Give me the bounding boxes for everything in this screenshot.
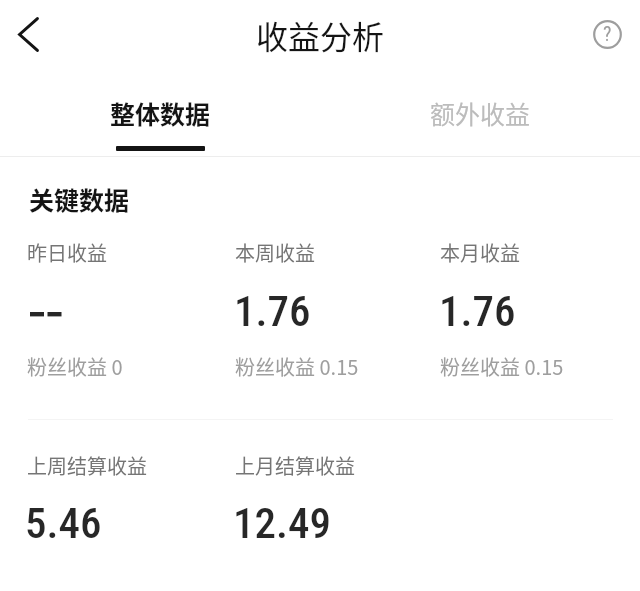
staticText: 粉丝收益 0.15	[235, 352, 359, 381]
staticText: 粉丝收益 0.15	[440, 352, 564, 381]
staticText: 上月结算收益	[235, 451, 355, 480]
staticText: 收益分析	[256, 12, 385, 58]
staticText: 整体数据	[110, 95, 211, 131]
staticText: 1.76	[439, 286, 516, 336]
staticText: 昨日收益	[27, 238, 107, 267]
staticText: 本周收益	[235, 238, 315, 267]
staticText: 5.46	[25, 498, 102, 548]
staticText: ?	[603, 22, 612, 45]
button[interactable]: 上周结算收益	[27, 451, 207, 543]
staticText: 额外收益	[430, 95, 531, 131]
staticText: 12.49	[233, 498, 331, 548]
button[interactable]: Help	[583, 10, 632, 59]
staticText: 1.76	[234, 286, 311, 336]
button[interactable]: Back	[0, 6, 56, 62]
button[interactable]: 整体数据	[0, 95, 320, 153]
staticText: 粉丝收益 0	[27, 352, 123, 381]
button[interactable]: 额外收益	[320, 95, 640, 153]
staticText: 关键数据	[29, 181, 130, 217]
button[interactable]: 昨日收益	[27, 238, 207, 378]
staticText: 上周结算收益	[27, 451, 147, 480]
button[interactable]: 上月结算收益	[235, 451, 415, 543]
staticText: 本月收益	[440, 238, 520, 267]
button[interactable]: 本月收益	[440, 238, 620, 378]
button[interactable]: 本周收益	[235, 238, 415, 378]
